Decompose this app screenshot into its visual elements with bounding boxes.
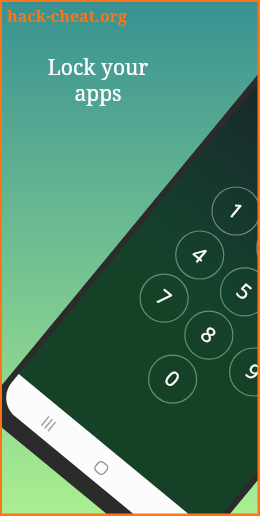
staticText: Lock your apps — [41, 53, 155, 108]
button[interactable]: Lock your apps — [41, 53, 155, 108]
staticText: hack-cheat.org — [7, 5, 128, 27]
